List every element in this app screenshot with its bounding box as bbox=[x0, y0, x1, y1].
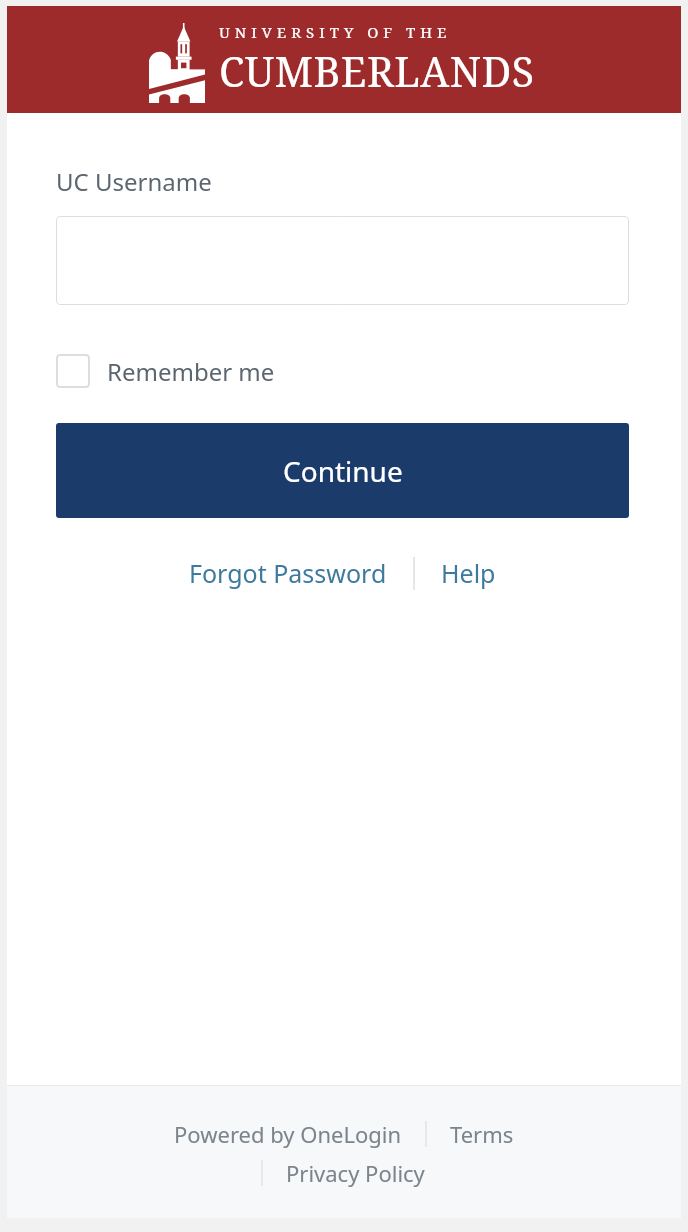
staticText: Terms bbox=[450, 1119, 514, 1149]
staticText: Powered by OneLogin bbox=[174, 1119, 402, 1149]
button[interactable]: UC Username input bbox=[56, 216, 629, 305]
button[interactable]: Help bbox=[435, 551, 502, 595]
staticText: Privacy Policy bbox=[286, 1158, 425, 1188]
staticText: UC Username bbox=[56, 165, 212, 198]
button[interactable]: Forgot Password bbox=[183, 551, 393, 595]
button[interactable]: Terms bbox=[447, 1119, 517, 1149]
button[interactable]: Powered by OneLogin bbox=[171, 1119, 405, 1149]
staticText: UNIVERSITY OF THE bbox=[219, 22, 452, 42]
staticText: CUMBERLANDS bbox=[219, 43, 535, 99]
button[interactable]: Privacy Policy bbox=[283, 1158, 428, 1188]
staticText: Help bbox=[441, 556, 496, 590]
button[interactable]: Remember me bbox=[56, 354, 275, 388]
other: University of the Cumberlands logo bbox=[149, 23, 205, 103]
staticText: Continue bbox=[283, 452, 403, 490]
staticText: Forgot Password bbox=[189, 556, 387, 590]
button[interactable]: Continue bbox=[56, 423, 629, 518]
staticText: Remember me bbox=[107, 355, 275, 388]
